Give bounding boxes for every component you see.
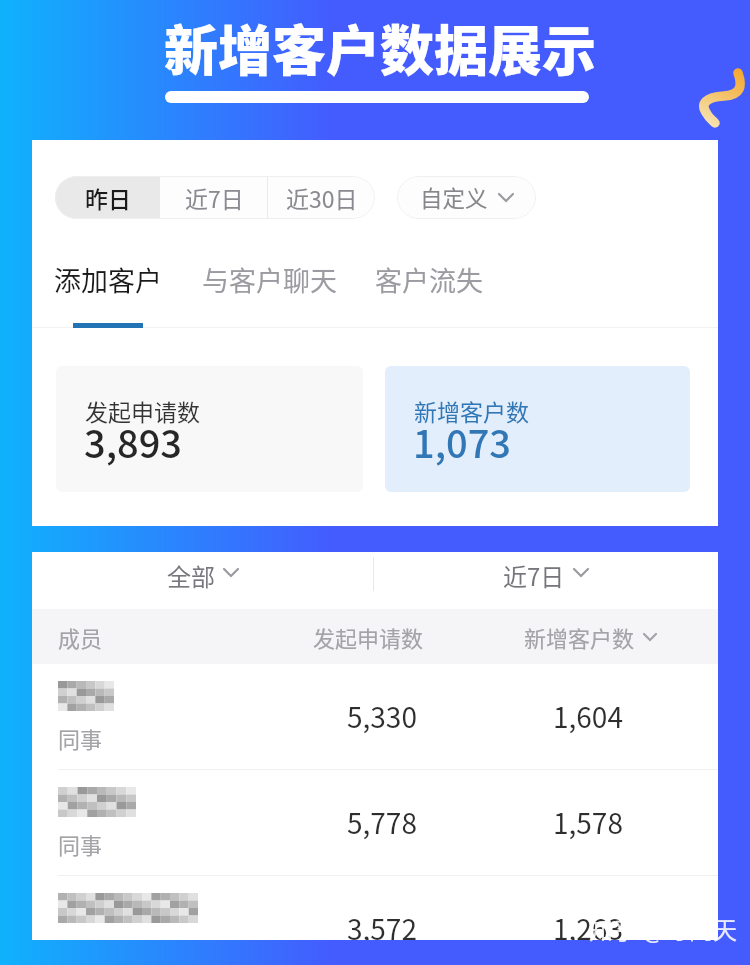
staticText: 1,578 <box>553 802 623 843</box>
staticText: 新增客户数 <box>414 394 529 427</box>
staticText: 自定义 <box>420 181 488 214</box>
staticText: 与客户聊天 <box>202 260 337 299</box>
staticText: 发起申请数 <box>313 621 424 653</box>
staticText: 3,893 <box>84 414 182 469</box>
staticText: 1,604 <box>553 696 623 737</box>
staticText: 近7日 <box>185 181 244 214</box>
staticText: 新增客户数 <box>524 621 635 653</box>
button[interactable]: 同事 <box>32 876 718 940</box>
button[interactable]: 近30日 <box>268 176 375 219</box>
staticText: 近30日 <box>286 181 358 214</box>
staticText: 新增客户数据展示 <box>164 8 596 86</box>
staticText: 成员 <box>58 621 103 653</box>
staticText: 全部 <box>167 558 215 593</box>
button[interactable]: 昨日 <box>55 176 160 219</box>
staticText: 1,263 <box>553 908 623 940</box>
button[interactable]: 添加客户 <box>54 260 162 299</box>
button[interactable]: 新增客户数 <box>385 366 690 492</box>
staticText: 知乎 @寻问天 <box>589 911 738 946</box>
other: decoration <box>696 66 750 130</box>
button[interactable]: 客户流失 <box>375 260 483 299</box>
button[interactable]: 发起申请数 <box>56 366 363 492</box>
button[interactable]: 与客户聊天 <box>202 260 337 299</box>
button[interactable]: 全部 <box>32 552 374 609</box>
staticText: 1,073 <box>413 414 511 469</box>
button[interactable]: 近7日 <box>374 552 718 609</box>
staticText: 同事 <box>58 722 103 754</box>
staticText: 5,778 <box>347 802 417 843</box>
staticText: 客户流失 <box>375 260 483 299</box>
staticText: 昨日 <box>85 181 131 214</box>
button[interactable]: 近7日 <box>160 176 268 219</box>
staticText: 添加客户 <box>54 260 162 299</box>
staticText: 近7日 <box>503 558 565 593</box>
staticText: 5,330 <box>347 696 417 737</box>
button[interactable]: 同事 <box>32 664 718 769</box>
button[interactable]: 新增客户数 <box>524 621 657 653</box>
button[interactable]: 同事 <box>32 770 718 875</box>
staticText: 3,572 <box>347 908 417 940</box>
staticText: 发起申请数 <box>85 394 200 427</box>
staticText: 同事 <box>58 828 103 860</box>
button[interactable]: 自定义 <box>397 176 536 219</box>
